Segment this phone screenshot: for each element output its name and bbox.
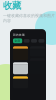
staticText: 一键收藏你喜欢的视频和图片内容 <box>3 13 55 23</box>
staticText: 全部 <box>15 39 21 42</box>
staticText: 我的收藏 <box>13 33 25 36</box>
staticText: 收藏 <box>3 0 21 11</box>
